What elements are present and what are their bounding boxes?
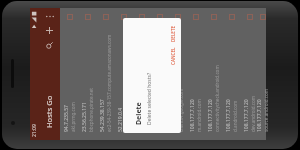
staticText: 108.177.7.120 [189, 99, 196, 132]
button[interactable]: 94.7.235.57 [60, 8, 78, 140]
button[interactable]: 54.239.38.157 [96, 8, 114, 140]
button[interactable]: 216.58.200.46 [150, 8, 168, 140]
button[interactable]: 108.177.7.120 [204, 8, 222, 140]
staticText: 108.177.7.120 [207, 99, 214, 132]
button[interactable]: 52.219.0.4 [114, 8, 132, 140]
button[interactable]: Select host [242, 10, 257, 25]
staticText: Hosts Go [44, 95, 54, 128]
button[interactable]: Select host [188, 10, 203, 25]
staticText: Delete selected hosts? [146, 72, 153, 125]
staticText: clients4.google.com [178, 88, 184, 132]
staticText: dev.android.com [250, 95, 256, 132]
button[interactable]: Select host [80, 10, 95, 25]
button[interactable]: Select host [98, 10, 113, 25]
button[interactable]: 108.177.7.120 [240, 8, 258, 140]
button[interactable]: Select host [116, 10, 131, 25]
staticText: 108.177.7.120 [256, 99, 263, 132]
staticText: 54.239.38.157 [99, 99, 106, 132]
staticText: d.android.com [232, 100, 238, 132]
staticText: connectivitycheck.android.com [214, 65, 220, 132]
button[interactable]: Select host [206, 10, 221, 25]
staticText: ec2-54-239-38-157.compute.amazonaws.com [106, 34, 112, 132]
staticText: CANCEL [170, 47, 176, 65]
staticText: 94.7.235.57 [63, 105, 70, 132]
staticText: 23.56.25.171 [81, 102, 88, 132]
button[interactable]: CANCEL [168, 45, 178, 67]
staticText: play.googleapis.com [142, 87, 148, 132]
button[interactable]: Select host [224, 10, 239, 25]
staticText: 21:09 [31, 124, 38, 137]
button[interactable]: Select host [170, 10, 185, 25]
button[interactable]: DELETE [168, 23, 178, 44]
staticText: 172.217.24.4 [135, 102, 142, 132]
button[interactable]: Select host [152, 10, 167, 25]
staticText: m.android.com [196, 99, 202, 132]
button[interactable]: Select host [62, 10, 77, 25]
button[interactable]: Add host [42, 23, 57, 38]
staticText: DELETE [170, 25, 176, 42]
staticText: 108.177.7.120 [243, 99, 250, 132]
staticText: bbcphone.pirate.net [88, 88, 94, 132]
staticText: akl.prmg.com [70, 102, 76, 132]
button[interactable]: 108.177.7.120 [186, 8, 204, 140]
button[interactable]: 108.177.7.120 [253, 8, 271, 140]
staticText: source.android.com [263, 89, 269, 132]
button[interactable]: More options [43, 10, 56, 23]
button[interactable]: Select host [255, 10, 270, 25]
staticText: 108.177.7.120 [225, 99, 232, 132]
button[interactable]: Select host [134, 10, 149, 25]
button[interactable]: 108.177.7.120 [222, 8, 240, 140]
button[interactable]: 108.177.7.120 [168, 8, 186, 140]
button[interactable]: Search [42, 38, 57, 53]
button[interactable]: 172.217.24.4 [132, 8, 150, 140]
button[interactable]: 23.56.25.171 [78, 8, 96, 140]
staticText: 52.219.0.4 [117, 107, 124, 132]
staticText: Delete [134, 102, 144, 125]
